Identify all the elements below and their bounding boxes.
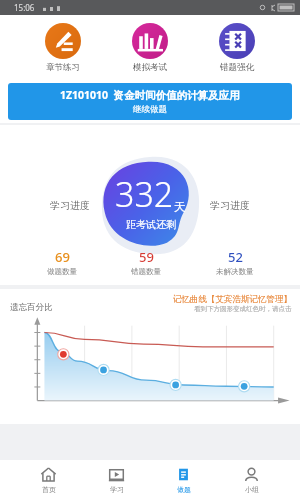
button[interactable]: 学习 <box>98 463 135 497</box>
button[interactable]: 错题强化 <box>213 21 261 75</box>
staticText: 做题数量 <box>47 267 77 276</box>
staticText: 做题 <box>177 485 191 494</box>
button[interactable]: 首页 <box>30 463 67 497</box>
staticText: 错题数量 <box>131 267 161 276</box>
staticText: 天 <box>174 199 186 214</box>
staticText: 学习进度 <box>50 199 90 212</box>
staticText: 错题强化 <box>220 62 254 73</box>
staticText: 遗忘百分比 <box>10 302 53 313</box>
button[interactable]: 小组 <box>233 463 270 497</box>
button[interactable]: 记忆曲线【艾宾浩斯记忆管理】 <box>173 294 292 313</box>
staticText: 59 <box>139 248 154 266</box>
staticText: 首页 <box>42 485 56 494</box>
button[interactable]: 1Z101010 资金时间价值的计算及应用 <box>8 83 292 120</box>
button[interactable]: 59 <box>123 247 169 277</box>
staticText: 未解决数量 <box>216 267 254 276</box>
staticText: 距考试还剩 <box>126 218 176 231</box>
staticText: 记忆曲线【艾宾浩斯记忆管理】 <box>173 294 292 305</box>
staticText: 学习进度 <box>210 199 250 212</box>
staticText: 69 <box>55 248 70 266</box>
staticText: 15:06 <box>14 2 35 13</box>
staticText: 小组 <box>245 485 259 494</box>
button[interactable]: 52 <box>208 247 262 277</box>
button[interactable]: 模拟考试 <box>126 21 174 75</box>
button[interactable]: 69 <box>39 247 85 277</box>
staticText: 学习 <box>110 485 124 494</box>
staticText: 模拟考试 <box>133 62 167 73</box>
staticText: 52 <box>228 248 243 266</box>
button[interactable]: 章节练习 <box>39 21 87 75</box>
button[interactable]: 做题 <box>165 463 202 497</box>
staticText: 看到下方圆形变成红色时，请点击 <box>194 305 292 313</box>
staticText: 1Z101010 资金时间价值的计算及应用 <box>60 88 240 102</box>
staticText: 332 <box>115 171 174 217</box>
staticText: 继续做题 <box>133 104 167 115</box>
staticText: 章节练习 <box>46 62 80 73</box>
